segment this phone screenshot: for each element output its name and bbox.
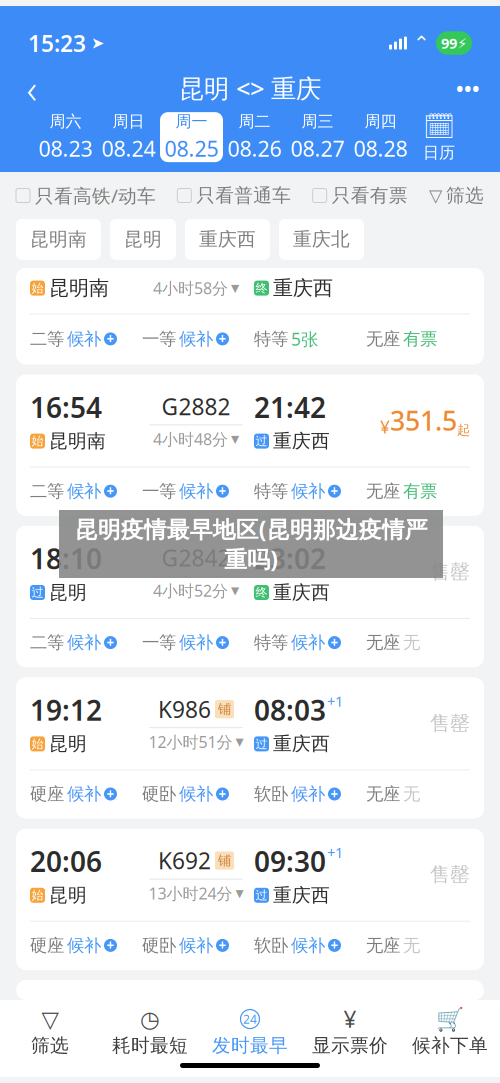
button[interactable]: ¥ [300, 1009, 400, 1057]
staticText: 周一 [175, 112, 207, 131]
staticText: 16:54 [30, 388, 102, 426]
staticText: 过 [255, 736, 267, 751]
staticText: 周六 [49, 112, 81, 131]
button[interactable]: 只看有票 [313, 184, 408, 207]
staticText: 候补 [67, 632, 101, 653]
staticText: 🗓 [423, 112, 455, 141]
staticText: + [218, 330, 226, 348]
staticText: 08:03 [254, 691, 326, 728]
button[interactable]: 重庆西 [185, 219, 270, 260]
staticText: ‹ [26, 62, 37, 115]
staticText: 筛选 [446, 184, 484, 207]
button[interactable]: 日历 [412, 112, 466, 162]
staticText: 终 [255, 281, 267, 295]
button[interactable]: 19:12 [16, 677, 484, 819]
button[interactable]: 昆明 [110, 219, 176, 260]
staticText: 4小时58分 [153, 277, 228, 299]
button[interactable]: 重庆北 [279, 219, 364, 260]
staticText: 4小时52分 [153, 580, 228, 601]
staticText: 二等 [30, 480, 64, 502]
button[interactable]: 20:06 [16, 829, 484, 970]
staticText: 候补下单 [412, 1034, 488, 1057]
staticText: 候补 [291, 632, 325, 653]
staticText: 08.27 [290, 134, 344, 163]
staticText: + [330, 785, 338, 803]
staticText: 周二 [238, 112, 270, 131]
staticText: 候补 [179, 632, 213, 653]
button[interactable]: 始 [16, 268, 484, 364]
button[interactable]: 周一 [160, 112, 223, 162]
staticText: 重庆西 [199, 228, 256, 251]
staticText: 候补 [67, 935, 101, 956]
button[interactable]: 更多 [446, 66, 490, 110]
button[interactable]: 24 [200, 1009, 300, 1057]
button[interactable]: 周六 [34, 112, 97, 162]
button[interactable]: 周日 [97, 112, 160, 162]
staticText: 售罄 [430, 711, 470, 736]
staticText: 重庆西 [273, 581, 330, 604]
staticText: ▼ [231, 282, 239, 294]
button[interactable]: 昆明南 [16, 219, 101, 260]
staticText: 5张 [291, 327, 318, 350]
button[interactable]: 周四 [349, 112, 412, 162]
staticText: 候补 [291, 935, 325, 956]
staticText: + [106, 634, 114, 651]
staticText: 昆明南 [49, 430, 106, 452]
staticText: 昆明 [49, 884, 87, 907]
staticText: 13小时24分 [148, 883, 232, 904]
staticText: 重庆西 [273, 430, 330, 452]
staticText: 候补 [67, 328, 101, 350]
staticText: + [330, 936, 338, 954]
staticText: 硬卧 [142, 935, 176, 956]
button[interactable]: 返回 [10, 66, 54, 110]
staticText: 🛒 [436, 1006, 464, 1032]
staticText: 无 [403, 783, 420, 805]
staticText: 有票 [403, 328, 437, 350]
staticText: 候补 [67, 480, 101, 502]
staticText: 始 [31, 434, 43, 448]
staticText: 昆明 [49, 732, 87, 755]
staticText: K692 [158, 845, 211, 876]
staticText: 特等 [254, 480, 288, 502]
staticText: 铺 [218, 701, 231, 717]
staticText: ¥ [343, 1004, 356, 1034]
button[interactable]: 周二 [223, 112, 286, 162]
button[interactable]: ▽ [429, 184, 484, 207]
staticText: 09:30 [254, 843, 326, 880]
staticText: ▽ [429, 186, 442, 205]
staticText: 重庆西 [273, 732, 330, 755]
button[interactable]: 只看高铁/动车 [16, 183, 156, 208]
staticText: 昆明 [49, 581, 87, 604]
button[interactable]: 🛒 [400, 1009, 500, 1057]
staticText: 24 [243, 1011, 257, 1027]
staticText: + [330, 482, 338, 500]
button[interactable]: ◷ [100, 1009, 200, 1057]
staticText: 特等 [254, 328, 288, 350]
staticText: 12小时51分 [148, 731, 232, 752]
staticText: 无座 [366, 480, 400, 502]
button[interactable]: 18:10 [16, 526, 484, 667]
staticText: G2882 [161, 391, 230, 421]
staticText: + [218, 785, 226, 803]
button[interactable]: 16:54 [16, 374, 484, 516]
staticText: 08.24 [101, 134, 155, 163]
staticText: 08.28 [353, 134, 407, 163]
button[interactable]: ▽ [0, 1009, 100, 1057]
staticText: 只看有票 [332, 184, 408, 207]
staticText: 351.5 [390, 403, 457, 438]
button[interactable]: 周三 [286, 112, 349, 162]
staticText: 特等 [254, 632, 288, 653]
staticText: + [106, 330, 114, 348]
staticText: 昆明 [124, 228, 162, 251]
staticText: 08.26 [227, 134, 281, 163]
staticText: 过 [255, 434, 267, 448]
staticText: + [106, 936, 114, 954]
staticText: 过 [255, 888, 267, 903]
staticText: ▼ [235, 736, 243, 748]
staticText: 20:06 [30, 843, 102, 880]
staticText: ◷ [140, 1006, 160, 1032]
staticText: ▼ [231, 584, 239, 596]
staticText: 二等 [30, 328, 64, 350]
staticText: 无座 [366, 783, 400, 805]
button[interactable]: 只看普通车 [177, 184, 291, 207]
